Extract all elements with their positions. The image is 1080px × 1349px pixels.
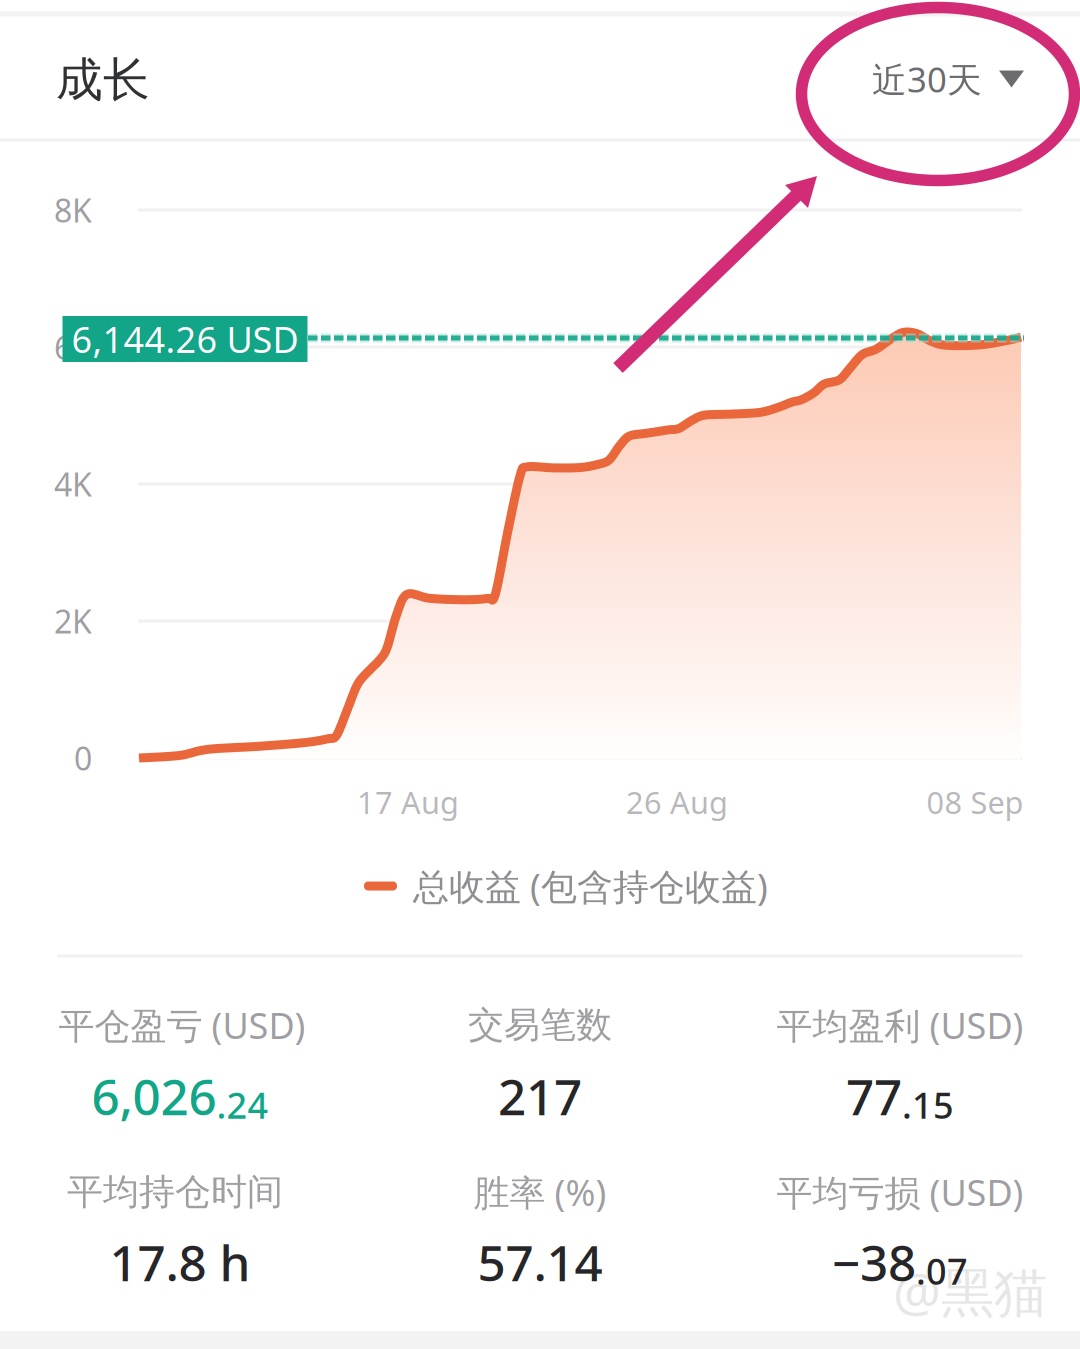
staticText: 胜率 (%) [473, 1168, 606, 1216]
staticText: .07 [916, 1247, 968, 1295]
staticText: 总收益 (包含持仓收益) [413, 862, 768, 910]
staticText: 17.8 h [109, 1229, 250, 1295]
staticText: 近30天 [872, 56, 982, 102]
staticText: 217 [498, 1063, 582, 1129]
staticText: 0 [74, 737, 92, 779]
staticText: 6,026 [91, 1063, 216, 1129]
staticText: .15 [902, 1081, 954, 1129]
staticText: 成长 [56, 51, 150, 109]
staticText: 08 Sep [926, 782, 1023, 822]
staticText: .24 [216, 1081, 268, 1129]
staticText: 2K [54, 600, 92, 642]
staticText: 8K [54, 189, 92, 231]
staticText: 57.14 [477, 1229, 602, 1295]
button[interactable]: 近30天 [850, 38, 1046, 120]
staticText: −38 [832, 1229, 916, 1295]
staticText: 平均持仓时间 [67, 1170, 283, 1214]
staticText: 77 [846, 1063, 902, 1129]
staticText: 平仓盈亏 (USD) [58, 1001, 305, 1049]
staticText: 26 Aug [626, 782, 728, 822]
staticText: 6K [54, 326, 92, 368]
staticText: @黑猫 [893, 1256, 1047, 1326]
staticText: 交易笔数 [468, 1003, 612, 1047]
staticText: 平均亏损 (USD) [776, 1168, 1023, 1216]
staticText: 平均盈利 (USD) [776, 1001, 1023, 1049]
staticText: 6,144.26 USD [71, 315, 298, 363]
staticText: 4K [54, 463, 92, 505]
staticText: 17 Aug [357, 782, 459, 822]
